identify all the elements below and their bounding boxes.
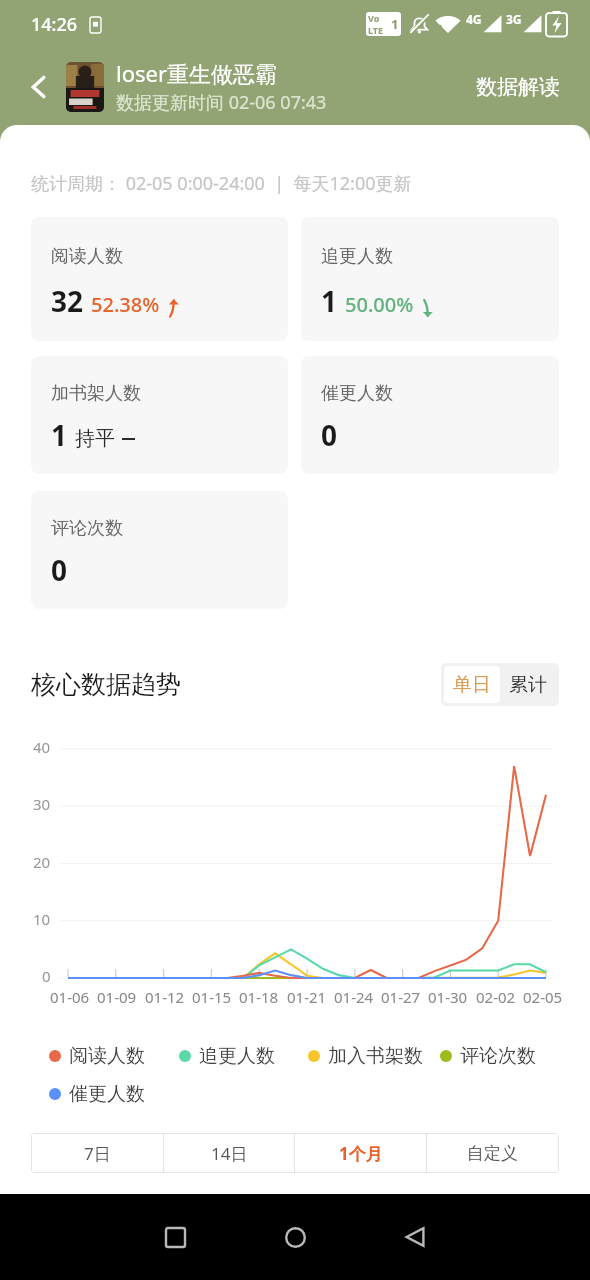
staticText: 统计周期： 02-05 0:00-24:00 | 每天12:00更新 <box>31 171 412 196</box>
staticText: 累计 <box>509 673 547 697</box>
staticText: 0 <box>51 551 68 589</box>
button[interactable]: 自定义 <box>427 1134 558 1172</box>
staticText: 40 <box>33 737 51 757</box>
button[interactable]: 阅读人数 <box>49 1041 145 1071</box>
staticText: 催更人数 <box>321 382 393 405</box>
staticText: 追更人数 <box>321 245 393 268</box>
staticText: 数据解读 <box>476 74 560 100</box>
staticText: Vo <box>368 12 380 24</box>
staticText: 01-30 <box>428 987 468 1007</box>
staticText: 0 <box>42 966 51 986</box>
button[interactable]: 评论次数 <box>440 1041 536 1071</box>
staticText: 评论次数 <box>51 517 123 540</box>
staticText: 1个月 <box>339 1142 383 1165</box>
staticText: 01-24 <box>334 987 374 1007</box>
staticText: LTE <box>368 24 384 36</box>
button[interactable]: 阅读人数 <box>31 217 288 341</box>
button[interactable]: 催更人数 <box>49 1079 145 1109</box>
staticText: 自定义 <box>467 1143 518 1164</box>
staticText: 持平 <box>75 426 115 451</box>
button[interactable]: Back <box>17 65 61 109</box>
staticText: 1 <box>51 416 68 454</box>
staticText: 52.38% <box>91 291 160 318</box>
staticText: 追更人数 <box>199 1044 275 1068</box>
button[interactable]: 7日 <box>32 1134 163 1172</box>
staticText: 01-06 <box>50 987 90 1007</box>
staticText: 催更人数 <box>69 1082 145 1106</box>
staticText: 01-09 <box>97 987 137 1007</box>
staticText: 核心数据趋势 <box>31 669 181 700</box>
button[interactable]: 数据解读 <box>472 66 564 108</box>
staticText: 01-15 <box>192 987 232 1007</box>
button[interactable]: 追更人数 <box>179 1041 275 1071</box>
staticText: 1 <box>391 15 399 33</box>
staticText: 加书架人数 <box>51 382 141 405</box>
button[interactable]: Book cover <box>66 62 104 112</box>
staticText: 阅读人数 <box>51 245 123 268</box>
staticText: 数据更新时间 02-06 07:43 <box>116 90 327 115</box>
button[interactable]: 1个月 <box>295 1134 426 1172</box>
button[interactable]: 14日 <box>164 1134 294 1172</box>
staticText: 01-21 <box>287 987 327 1007</box>
staticText: 1 <box>321 282 338 320</box>
staticText: 0 <box>321 416 338 454</box>
staticText: 评论次数 <box>460 1044 536 1068</box>
button[interactable]: 累计 <box>500 666 556 703</box>
staticText: 单日 <box>453 673 491 697</box>
button[interactable]: 加书架人数 <box>31 356 288 474</box>
button[interactable]: Recents <box>144 1206 206 1268</box>
staticText: 14日 <box>211 1142 248 1165</box>
staticText: 01-12 <box>145 987 185 1007</box>
staticText: 7日 <box>84 1142 111 1165</box>
button[interactable]: 评论次数 <box>31 491 288 609</box>
staticText: 32 <box>51 282 84 320</box>
staticText: 加入书架数 <box>328 1044 423 1068</box>
staticText: 20 <box>33 852 51 872</box>
staticText: 01-18 <box>239 987 279 1007</box>
staticText: loser重生做恶霸 <box>116 58 278 88</box>
staticText: 14:26 <box>31 12 78 37</box>
staticText: 01-27 <box>381 987 421 1007</box>
button[interactable]: Back <box>384 1206 446 1268</box>
staticText: 3G <box>506 11 522 27</box>
button[interactable]: 加入书架数 <box>308 1041 423 1071</box>
staticText: 02-02 <box>476 987 516 1007</box>
button[interactable]: 催更人数 <box>301 356 559 474</box>
button[interactable]: Home <box>264 1206 326 1268</box>
staticText: 50.00% <box>345 291 414 318</box>
staticText: 02-05 <box>523 987 563 1007</box>
staticText: 阅读人数 <box>69 1044 145 1068</box>
staticText: 30 <box>33 794 51 814</box>
staticText: 10 <box>33 909 51 929</box>
staticText: 4G <box>466 11 482 27</box>
button[interactable]: 追更人数 <box>301 217 559 341</box>
button[interactable]: 单日 <box>444 666 500 703</box>
